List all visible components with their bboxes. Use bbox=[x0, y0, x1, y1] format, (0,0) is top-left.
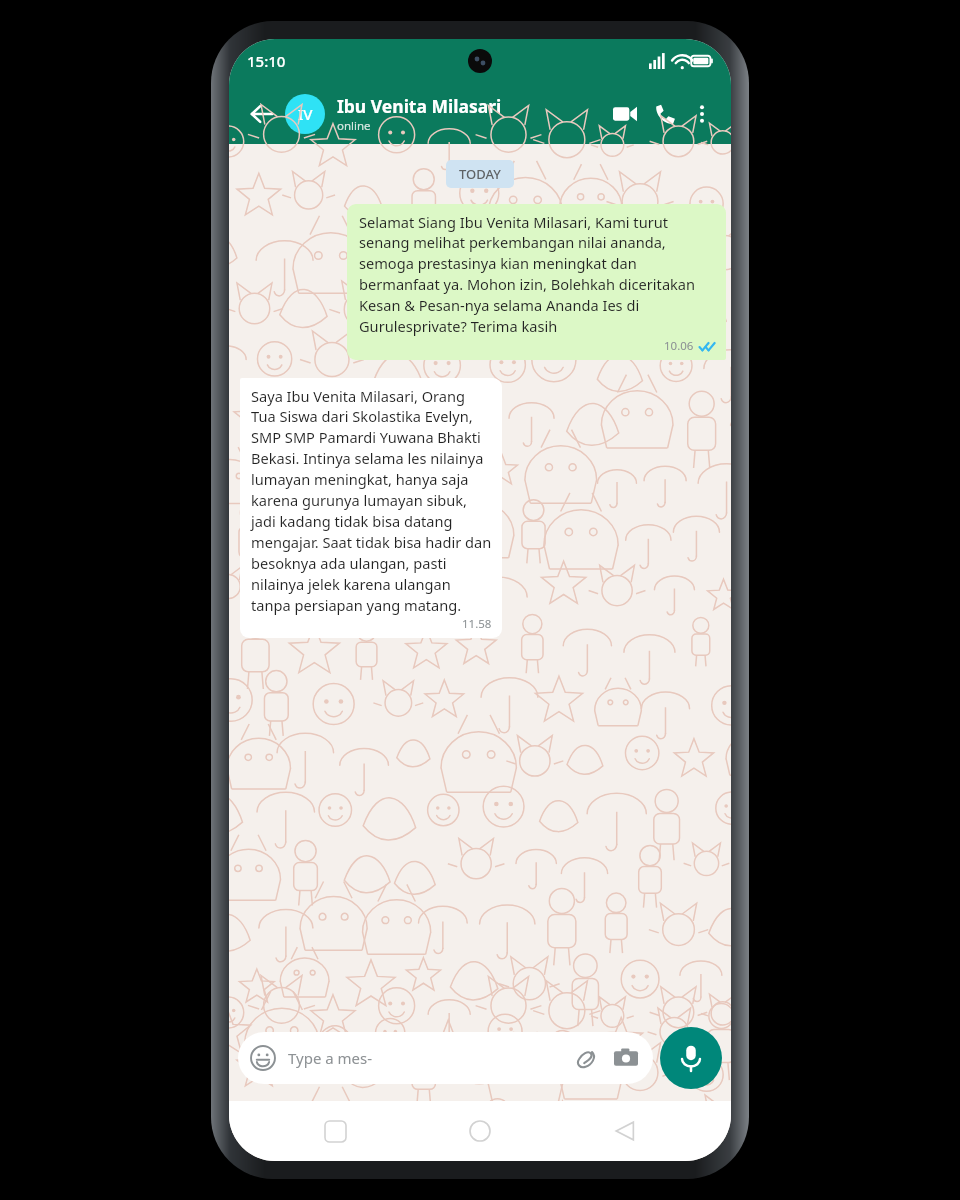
button[interactable]: IV bbox=[285, 94, 325, 134]
button[interactable]: Type a mes- bbox=[238, 1032, 653, 1084]
button[interactable]: Selamat Siang Ibu Venita Milasari, Kami … bbox=[347, 204, 726, 360]
staticText: Selamat Siang Ibu Venita Milasari, Kami … bbox=[359, 212, 716, 337]
staticText: IV bbox=[298, 104, 313, 124]
staticText: online bbox=[337, 118, 371, 134]
button[interactable]: Attach bbox=[571, 1043, 601, 1073]
staticText: 11.58 bbox=[462, 616, 492, 632]
button[interactable]: Video call bbox=[605, 94, 645, 134]
button[interactable]: Ibu Venita Milasari bbox=[337, 94, 605, 134]
button[interactable]: Saya Ibu Venita Milasari, Orang Tua Sisw… bbox=[240, 378, 502, 638]
staticText: 10.06 bbox=[664, 338, 694, 354]
button[interactable]: Camera bbox=[611, 1043, 641, 1073]
button[interactable]: Back bbox=[603, 1109, 647, 1153]
button[interactable]: Voice call bbox=[645, 94, 685, 134]
button[interactable]: Recents bbox=[313, 1109, 357, 1153]
staticText: Type a mes- bbox=[288, 1048, 373, 1068]
button[interactable]: TODAY bbox=[459, 165, 501, 183]
button[interactable]: Home bbox=[458, 1109, 502, 1153]
button[interactable]: More options bbox=[685, 97, 719, 131]
staticText: TODAY bbox=[459, 165, 501, 183]
button[interactable]: Back bbox=[243, 95, 281, 133]
staticText: Saya Ibu Venita Milasari, Orang Tua Sisw… bbox=[251, 386, 492, 616]
button[interactable]: Voice message bbox=[660, 1027, 722, 1089]
staticText: 15:10 bbox=[247, 51, 286, 71]
staticText: Ibu Venita Milasari bbox=[337, 94, 502, 118]
